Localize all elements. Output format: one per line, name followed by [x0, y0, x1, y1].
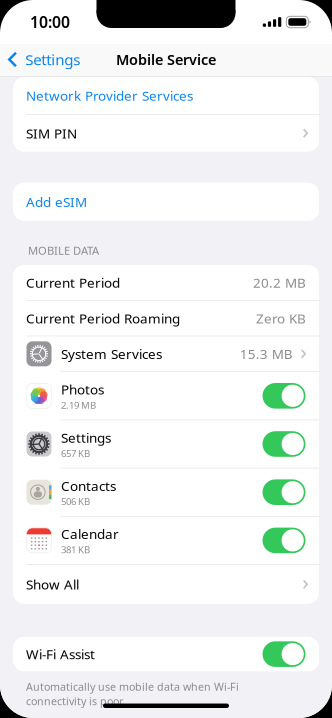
button[interactable]: Add eSIM [13, 183, 319, 221]
button[interactable]: Calendar [13, 517, 319, 564]
staticText: 506 KB [61, 495, 90, 508]
button[interactable]: Current Period [13, 265, 319, 300]
button[interactable]: SIM PIN [13, 115, 319, 152]
staticText: Photos [61, 380, 104, 398]
button[interactable]: Wi-Fi Assist [13, 637, 319, 671]
staticText: Show All [26, 575, 79, 593]
staticText: 381 KB [61, 543, 90, 556]
staticText: Settings [61, 428, 111, 447]
staticText: 15.3 MB [240, 345, 293, 363]
staticText: Current Period [26, 273, 120, 292]
staticText: Automatically use mobile data when Wi-Fi… [26, 679, 239, 708]
staticText: Contacts [61, 476, 116, 495]
button[interactable]: Current Period Roaming [13, 301, 319, 336]
staticText: Zero KB [256, 309, 306, 327]
staticText: 2.19 MB [61, 398, 96, 411]
staticText: System Services [61, 345, 162, 363]
button[interactable]: Contacts [13, 468, 319, 516]
staticText: Calendar [61, 525, 119, 543]
button[interactable]: Settings [13, 420, 319, 468]
staticText: SIM PIN [26, 124, 77, 142]
staticText: Current Period Roaming [26, 309, 180, 327]
staticText: Settings [25, 49, 80, 70]
button[interactable]: Photos [13, 372, 319, 420]
staticText: Network Provider Services [26, 86, 193, 105]
staticText: 657 KB [61, 447, 90, 460]
staticText: Wi-Fi Assist [26, 645, 95, 663]
button[interactable]: Show All [13, 565, 319, 604]
button[interactable]: Settings [0, 44, 80, 75]
button[interactable]: Network Provider Services [13, 77, 319, 114]
staticText: Mobile Service [116, 50, 216, 69]
staticText: Add eSIM [26, 192, 87, 211]
button[interactable]: System Services [13, 336, 319, 371]
staticText: 10:00 [30, 11, 70, 33]
staticText: 20.2 MB [253, 273, 306, 292]
staticText: MOBILE DATA [28, 243, 99, 258]
